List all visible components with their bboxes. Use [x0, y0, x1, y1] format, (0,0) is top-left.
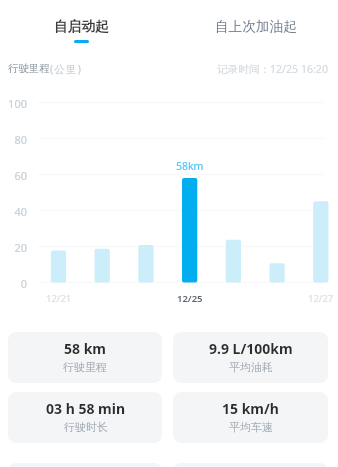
staticText: 行驶里程	[8, 62, 50, 75]
staticText: 58km	[176, 159, 204, 173]
button[interactable]: 58 km	[8, 332, 162, 383]
staticText: 行驶里程	[63, 360, 107, 374]
button[interactable]: 9.9 L/100km	[173, 332, 328, 383]
staticText: 0	[0, 276, 27, 291]
staticText: (公里)	[50, 62, 83, 76]
staticText: 03 h 58 min	[46, 399, 125, 418]
button[interactable]: 自启动起	[11, 0, 151, 47]
staticText: 自上次加油起	[215, 18, 297, 35]
staticText: 100	[0, 96, 27, 111]
staticText: 12/27	[308, 292, 334, 305]
staticText: 58 km	[64, 339, 106, 358]
staticText: 9.9 L/100km	[209, 339, 293, 358]
button[interactable]: 自上次加油起	[186, 0, 326, 47]
staticText: 平均油耗	[229, 360, 273, 374]
staticText: 自启动起	[54, 18, 109, 35]
staticText: 60	[0, 168, 27, 183]
staticText: 80	[0, 132, 27, 147]
button[interactable]: 03 h 58 min	[8, 392, 162, 443]
staticText: 40	[0, 204, 27, 219]
staticText: 20	[0, 240, 27, 255]
staticText: 记录时间：12/25 16:20	[217, 62, 328, 76]
staticText: 行驶时长	[64, 420, 108, 434]
staticText: 平均车速	[229, 420, 273, 434]
staticText: 12/21	[46, 292, 72, 305]
button[interactable]: 15 km/h	[173, 392, 328, 443]
staticText: 15 km/h	[222, 399, 279, 418]
staticText: 12/25	[177, 292, 203, 305]
